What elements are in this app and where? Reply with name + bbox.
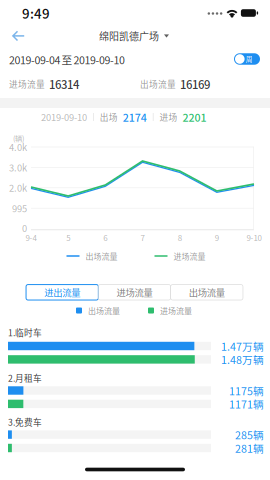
button[interactable]: 进出流量	[26, 285, 98, 300]
button[interactable]: 进场流量	[98, 285, 171, 300]
staticText: 1175辆	[229, 383, 264, 398]
staticText: 进出流量	[44, 285, 80, 299]
staticText: 2019-09-04 至 2019-09-10	[9, 52, 125, 67]
staticText: 16169	[180, 76, 210, 92]
staticText: 3.0k	[9, 161, 27, 174]
staticText: 1171辆	[229, 396, 264, 412]
staticText: 出场流量	[88, 305, 120, 316]
button[interactable]: 2019-09-04 至 2019-09-10	[9, 48, 125, 71]
staticText: (辆)	[13, 133, 24, 143]
staticText: 2.月租车	[8, 372, 42, 384]
staticText: 绵阳凯德广场	[99, 29, 159, 43]
button[interactable]: Back	[3, 21, 34, 50]
staticText: 2174	[123, 109, 147, 125]
staticText: 3.免费车	[8, 416, 42, 428]
staticText: 进场流量	[160, 305, 192, 316]
staticText: 出场流量	[189, 285, 225, 299]
staticText: 8	[178, 232, 182, 243]
staticText: 1.临时车	[8, 326, 42, 339]
staticText: 周	[246, 54, 253, 64]
staticText: 4.0k	[9, 140, 27, 154]
staticText: 9-10	[246, 232, 261, 243]
staticText: 进场流量	[116, 285, 152, 299]
staticText: 2201	[183, 109, 207, 125]
staticText: 出场	[100, 111, 118, 123]
staticText: 16314	[49, 76, 79, 92]
staticText: 1.47万辆	[221, 338, 264, 354]
staticText: 0	[22, 221, 27, 235]
staticText: 出场流量	[140, 78, 176, 90]
staticText: 7	[140, 232, 144, 243]
button[interactable]: 绵阳凯德广场	[95, 23, 173, 49]
staticText: 9-4	[25, 232, 36, 243]
staticText: 9:49	[22, 3, 50, 23]
button[interactable]: Week mode toggle	[234, 53, 260, 65]
staticText: 285辆	[235, 427, 264, 442]
staticText: 进场	[160, 111, 178, 123]
staticText: 2019-09-10	[41, 110, 87, 124]
button[interactable]: 出场流量	[171, 285, 243, 300]
staticText: 出场流量	[85, 250, 117, 262]
staticText: 6	[103, 232, 107, 243]
staticText: 9	[215, 232, 219, 243]
staticText: 进场流量	[9, 78, 45, 90]
staticText: 进场流量	[173, 250, 205, 262]
staticText: 995	[12, 201, 27, 215]
staticText: 281辆	[235, 440, 264, 456]
staticText: 1.48万辆	[221, 352, 264, 367]
staticText: 5	[66, 232, 70, 243]
staticText: 2.0k	[9, 181, 27, 194]
